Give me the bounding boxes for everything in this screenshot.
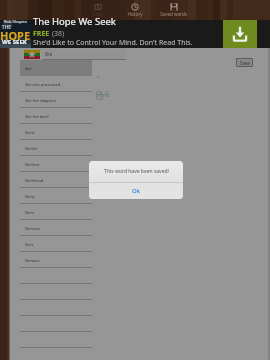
button[interactable]: Saved words [154,0,192,19]
staticText: like the devil [25,114,49,119]
button[interactable]: Install [223,20,257,48]
staticText: WE SEEK [2,38,27,46]
button[interactable]: like one possessed [20,76,92,92]
staticText: History [127,11,143,17]
staticText: The Hope We Seek [33,15,116,28]
staticText: She'd Like to Control Your Mind. Don't R… [33,38,193,48]
staticText: This word have been saved! [104,168,169,175]
staticText: ၀ [97,74,100,81]
button[interactable]: likes [20,236,92,252]
staticText: THE [0,24,22,31]
staticText: likeliest [25,162,40,167]
staticText: liken [25,210,34,215]
button[interactable]: likewise [20,252,92,268]
staticText: Saved words [160,11,187,17]
staticText: Rob Shapiro [0,19,31,24]
button[interactable]: Copy [78,0,116,19]
staticText: HOPE [0,28,31,43]
button[interactable]: likeness [20,220,92,236]
button[interactable]: likeliest [20,156,92,172]
button[interactable]: like the clappers [20,92,92,108]
staticText: Copy [92,11,103,17]
staticText: ကြိုက် [96,91,109,100]
button[interactable]: Save [236,58,253,67]
staticText: likes [25,242,34,247]
staticText: like [45,51,53,57]
staticText: like [25,66,32,71]
button[interactable]: likelier [20,140,92,156]
staticText: liked [25,130,34,135]
staticText: FREE [33,29,52,39]
staticText: Save [240,60,250,66]
staticText: likely [25,194,35,199]
staticText: likelier [25,146,38,151]
staticText: likelihood [25,178,44,183]
staticText: like the clappers [25,98,56,103]
button[interactable]: Ok [89,183,183,199]
button[interactable]: liken [20,204,92,220]
staticText: (38) [52,29,65,39]
button[interactable]: likely [20,188,92,204]
button[interactable]: like [20,60,92,76]
staticText: Ok [132,187,141,195]
button[interactable]: like the devil [20,108,92,124]
button[interactable]: likelihood [20,172,92,188]
button[interactable]: liked [20,124,92,140]
button[interactable]: History [116,0,154,19]
staticText: like one possessed [25,82,61,87]
staticText: likeness [25,226,41,231]
staticText: likewise [25,258,40,263]
